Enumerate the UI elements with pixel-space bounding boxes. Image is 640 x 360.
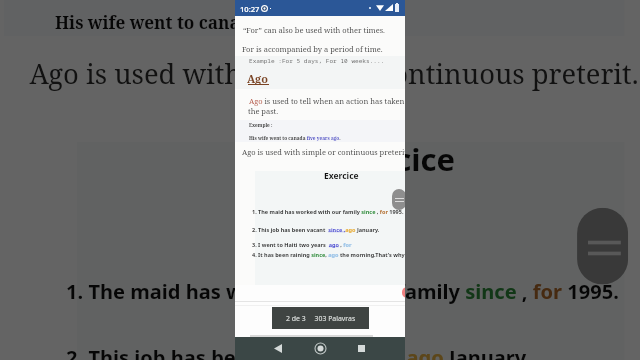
staticText: Ago is used to tell when an action has t… (249, 96, 405, 106)
staticText: 3. I went to Haiti two years ago , for (252, 241, 352, 248)
button[interactable]: Scroll handle (577, 208, 628, 284)
staticText: 2. This job has been vacant since ,ago J… (252, 226, 380, 233)
button[interactable]: Recent apps (351, 337, 371, 360)
button[interactable]: Add (402, 287, 405, 298)
staticText: Ago is used with simple or continuous pr… (30, 54, 639, 91)
staticText: 4. It has been raining since, ago the mo… (252, 251, 405, 258)
staticText: His wife went to canada five years ago. (249, 135, 341, 141)
staticText: Exercice (329, 138, 457, 182)
staticText: Example :For 5 days, For 10 weeks.... (249, 56, 385, 64)
staticText: 1. The maid has worked with our family s… (66, 277, 621, 303)
staticText: Exercice (324, 170, 359, 182)
button[interactable]: 2 de 3 303 Palavras (272, 307, 369, 329)
staticText: 2. This job has been vacant since ,ago J… (66, 343, 533, 360)
staticText: the past. (248, 106, 279, 116)
staticText: Ago (247, 71, 268, 86)
staticText: His wife went to canada five years ago. (55, 11, 391, 33)
button[interactable]: Back (268, 337, 288, 360)
button[interactable]: Scroll handle (392, 189, 405, 210)
staticText: 2 de 3 303 Palavras (286, 314, 356, 323)
staticText: “For” can also be used with other times. (243, 25, 385, 35)
staticText: For is accompanied by a period of time. (242, 44, 383, 54)
staticText: Exemple : (249, 122, 273, 128)
staticText: Ago is used with simple or continuous pr… (242, 147, 405, 157)
staticText: 10:27 (240, 4, 260, 14)
button[interactable]: Home (310, 337, 330, 360)
staticText: 1. The maid has worked with our family s… (252, 208, 404, 215)
